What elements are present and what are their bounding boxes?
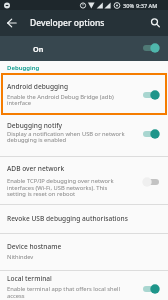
button[interactable]: Revoke USB debugging authorisations [0,205,168,234]
button[interactable] [141,283,161,295]
staticText: 30% [123,2,135,10]
staticText: setting is reset on reboot [7,190,76,198]
button[interactable]: Debugging notify [0,115,168,156]
staticText: Enable terminal app that offers local sh… [7,285,120,293]
button[interactable]: Local terminal [0,271,168,300]
staticText: Debugging notify [7,121,63,130]
staticText: ADB over network [7,164,65,173]
button[interactable] [4,15,20,31]
button[interactable]: Device hostname [0,234,168,270]
staticText: access [7,292,25,300]
staticText: Nithindev [7,253,34,261]
staticText: debugging is enabled [7,136,67,144]
staticText: Local terminal [7,274,52,283]
staticText: Device hostname [7,242,62,251]
button[interactable] [141,128,161,140]
staticText: Debugging [7,64,40,72]
staticText: On [33,44,44,54]
button[interactable]: Android debugging [1,73,167,115]
staticText: Enable the Android Debug Bridge (adb) [7,93,114,101]
staticText: Display a notification when USB or netwo… [7,130,125,138]
staticText: Revoke USB debugging authorisations [7,214,128,223]
button[interactable]: On [0,36,168,61]
button[interactable] [147,16,163,32]
button[interactable]: ADB over network [0,157,168,204]
staticText: Android debugging [7,82,69,91]
staticText: interfaces (Wi-Fi, USB networks). This [7,184,108,192]
button[interactable] [141,42,161,54]
staticText: interface [7,99,32,107]
button[interactable] [141,89,161,101]
staticText: 9:37 AM [136,2,158,10]
button[interactable] [141,176,161,188]
staticText: Developer options [30,17,105,29]
staticText: Enable TCP/IP debugging over network [7,177,114,185]
